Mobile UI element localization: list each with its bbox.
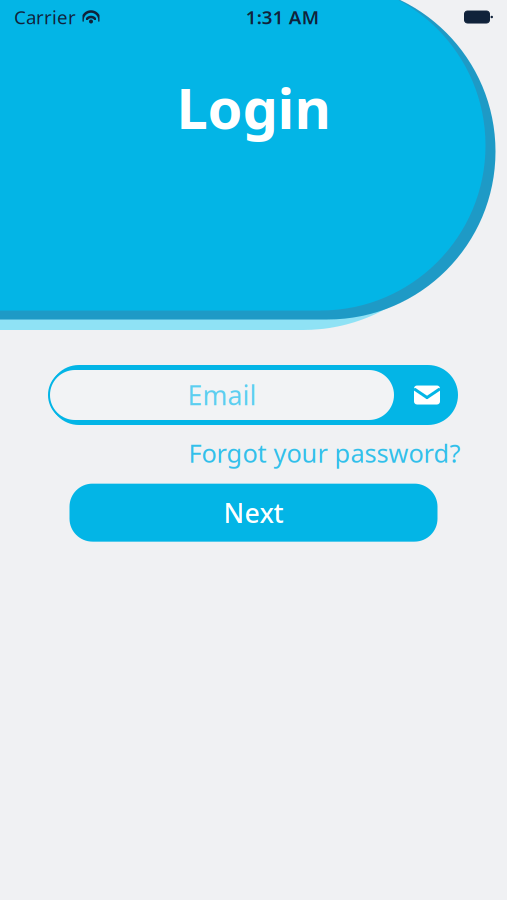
button[interactable]: Email (49, 365, 458, 425)
staticText: Forgot your password? (188, 436, 460, 470)
button[interactable]: Forgot your password? (188, 436, 460, 470)
button[interactable]: Next (69, 484, 437, 542)
staticText: Email (187, 377, 256, 413)
staticText: 1:31 AM (246, 5, 319, 29)
staticText: Next (223, 495, 283, 530)
staticText: Login (176, 70, 330, 144)
staticText: Carrier (14, 5, 76, 29)
